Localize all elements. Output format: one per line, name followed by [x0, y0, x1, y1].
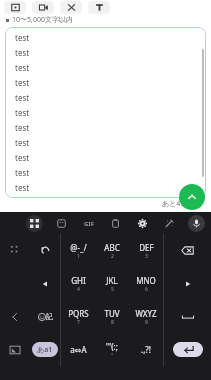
staticText: 3	[145, 253, 148, 260]
staticText: TUV	[104, 308, 120, 319]
staticText: PQRS	[68, 308, 89, 319]
button[interactable]: Settings	[134, 215, 151, 232]
button[interactable]: Stickers	[53, 215, 70, 232]
staticText: test	[15, 32, 30, 43]
staticText: a⇔A	[70, 344, 87, 355]
staticText: 10〜5,000文字以内	[12, 15, 73, 25]
button[interactable]: a⇔A	[61, 333, 95, 366]
staticText: GHI	[71, 275, 86, 286]
staticText: test	[15, 167, 30, 178]
staticText: '"(:;	[106, 341, 118, 352]
button[interactable]: Video	[32, 1, 54, 14]
staticText: test	[15, 122, 30, 133]
button[interactable]: PQRS	[61, 300, 95, 333]
staticText: MNO	[136, 275, 156, 286]
staticText: test	[15, 182, 30, 193]
staticText: 2	[111, 253, 114, 260]
button[interactable]: Resize keyboard	[0, 234, 30, 267]
staticText: 6	[145, 286, 148, 293]
staticText: GIF	[84, 220, 94, 228]
staticText: test	[15, 77, 30, 88]
button[interactable]: Emoji and symbols	[30, 300, 60, 333]
staticText: °	[111, 352, 114, 359]
button[interactable]: DEF	[129, 234, 163, 267]
staticText: ABC	[104, 242, 120, 253]
button[interactable]: ABC	[95, 234, 129, 267]
button[interactable]: あa1	[32, 342, 58, 357]
staticText: DEF	[139, 242, 154, 253]
button[interactable]: photo	[4, 1, 26, 14]
button[interactable]: Close	[60, 1, 82, 14]
staticText: @-_/	[70, 242, 87, 253]
button[interactable]: Keyboard layouts	[26, 215, 43, 232]
staticText: 7	[77, 319, 80, 326]
button[interactable]: Undo	[30, 234, 60, 267]
staticText: 1	[77, 253, 80, 260]
button[interactable]: MNO	[129, 267, 163, 300]
staticText: JKL	[106, 275, 118, 286]
button[interactable]: GIF	[80, 215, 97, 232]
staticText: test	[15, 107, 30, 118]
button[interactable]: '"(:;	[95, 333, 129, 366]
button[interactable]: Space	[164, 300, 211, 333]
button[interactable]: Move cursor right	[164, 267, 211, 300]
button[interactable]: Themes	[161, 215, 178, 232]
staticText: あと4906	[162, 199, 193, 209]
button[interactable]: Clipboard	[107, 215, 124, 232]
button[interactable]: Scroll to top	[179, 184, 205, 210]
staticText: WXYZ	[135, 308, 157, 319]
button[interactable]: WXYZ	[129, 300, 163, 333]
button[interactable]: GHI	[61, 267, 95, 300]
button[interactable]: test	[5, 27, 206, 198]
staticText: .,?!	[141, 344, 151, 355]
button[interactable]: @-_/	[61, 234, 95, 267]
button[interactable]: Format text	[88, 1, 110, 14]
button[interactable]: Voice input	[188, 215, 205, 232]
button[interactable]: TUV	[95, 300, 129, 333]
button[interactable]: Move cursor left	[30, 267, 60, 300]
staticText: あa1	[37, 345, 53, 355]
button[interactable]: Delete	[164, 234, 211, 267]
staticText: 8	[111, 319, 114, 326]
button[interactable]: Floating keyboard	[0, 333, 30, 366]
staticText: test	[15, 137, 30, 148]
button[interactable]: JKL	[95, 267, 129, 300]
staticText: 4	[77, 286, 80, 293]
staticText: 記	[46, 312, 53, 321]
staticText: test	[15, 152, 30, 163]
staticText: test	[15, 62, 30, 73]
staticText: 5	[111, 286, 114, 293]
staticText: test	[15, 92, 30, 103]
staticText: test	[15, 47, 30, 58]
staticText: 9	[145, 319, 148, 326]
button[interactable]: Enter	[173, 342, 203, 357]
button[interactable]: Back	[0, 300, 30, 333]
button[interactable]: .,?!	[129, 333, 163, 366]
